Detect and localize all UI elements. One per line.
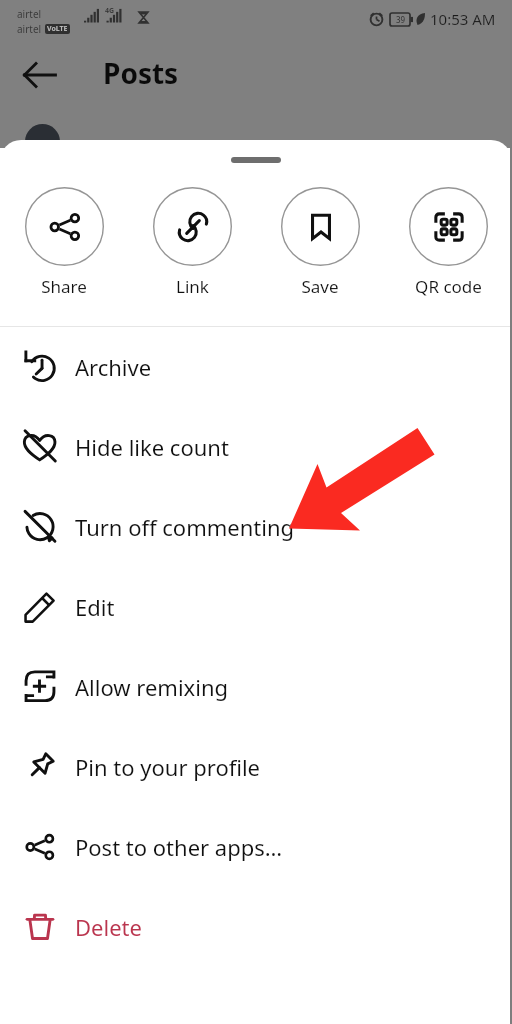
button[interactable]: Back	[16, 51, 64, 99]
staticText: Link	[176, 275, 209, 298]
button[interactable]: Pin to your profile	[0, 727, 512, 807]
staticText: QR code	[415, 275, 482, 298]
button[interactable]: Delete	[0, 887, 512, 967]
staticText: airtel	[17, 7, 42, 21]
staticText: Post to other apps…	[75, 832, 283, 862]
staticText: 4G	[105, 6, 115, 16]
staticText: Archive	[75, 352, 152, 382]
staticText: Turn off commenting	[75, 512, 295, 542]
staticText: Edit	[75, 592, 115, 622]
staticText: Hide like count	[75, 432, 229, 462]
button[interactable]: Link	[128, 187, 256, 298]
button[interactable]: Turn off commenting	[0, 487, 512, 567]
staticText: 39	[396, 14, 406, 25]
staticText: Pin to your profile	[75, 752, 261, 782]
button[interactable]: Share	[0, 187, 128, 298]
staticText: airtel	[17, 22, 42, 36]
button[interactable]: Post to other apps…	[0, 807, 512, 887]
staticText: Save	[301, 275, 339, 298]
staticText: Delete	[75, 912, 142, 942]
staticText: Posts	[103, 54, 179, 92]
button[interactable]: Edit	[0, 567, 512, 647]
staticText: 10:53 AM	[430, 9, 496, 29]
button[interactable]: Allow remixing	[0, 647, 512, 727]
staticText: VoLTE	[47, 24, 68, 34]
button[interactable]: QR code	[384, 187, 512, 298]
button[interactable]: Hide like count	[0, 407, 512, 487]
staticText: Share	[41, 275, 87, 298]
button[interactable]: Save	[256, 187, 384, 298]
staticText: Allow remixing	[75, 672, 229, 702]
button[interactable]: Archive	[0, 327, 512, 407]
